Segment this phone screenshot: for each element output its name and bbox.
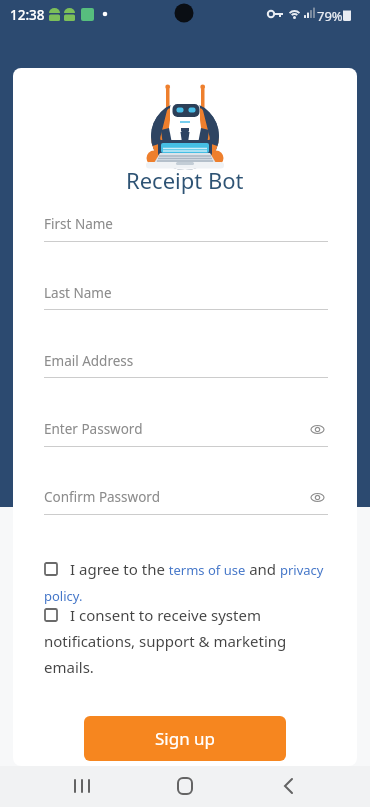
- button[interactable]: Sign up: [84, 716, 286, 761]
- staticText: Email Address: [44, 352, 134, 370]
- button[interactable]: I agree to the terms of use and privacy: [70, 559, 324, 579]
- button[interactable]: Enter Password: [44, 406, 341, 447]
- staticText: Receipt Bot: [126, 165, 244, 195]
- button[interactable]: [311, 493, 324, 502]
- staticText: I consent to receive system: [70, 605, 261, 625]
- staticText: Sign up: [155, 727, 216, 750]
- button[interactable]: [163, 766, 208, 807]
- staticText: 12:38: [10, 6, 45, 24]
- button[interactable]: [44, 562, 58, 576]
- staticText: Confirm Password: [44, 488, 160, 506]
- button[interactable]: Confirm Password: [44, 474, 341, 515]
- button[interactable]: [60, 766, 105, 807]
- staticText: Last Name: [44, 284, 112, 302]
- staticText: 79%: [317, 7, 343, 25]
- button[interactable]: Last Name: [44, 270, 341, 310]
- button[interactable]: First Name: [44, 201, 341, 242]
- button[interactable]: policy.: [44, 587, 83, 605]
- button[interactable]: [44, 608, 58, 622]
- button[interactable]: Email Address: [44, 338, 341, 378]
- staticText: Enter Password: [44, 420, 143, 438]
- button[interactable]: [311, 425, 324, 434]
- staticText: emails.: [44, 657, 94, 677]
- staticText: First Name: [44, 215, 113, 233]
- button[interactable]: [266, 766, 311, 807]
- staticText: notifications, support & marketing: [44, 631, 287, 651]
